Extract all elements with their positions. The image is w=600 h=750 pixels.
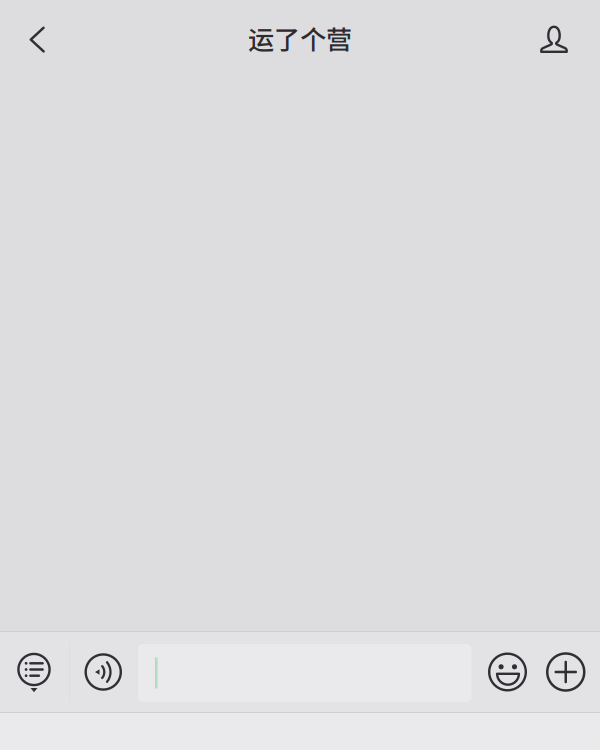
button[interactable]: Contact info [512, 9, 600, 69]
button[interactable]: Back [0, 9, 72, 69]
button[interactable]: More options [0, 632, 69, 712]
button[interactable]: Emoji [471, 632, 546, 712]
staticText: 运了个营 [248, 19, 352, 57]
button[interactable]: Voice message [70, 632, 138, 712]
button[interactable]: Message [138, 642, 471, 702]
button[interactable]: More [546, 632, 600, 712]
